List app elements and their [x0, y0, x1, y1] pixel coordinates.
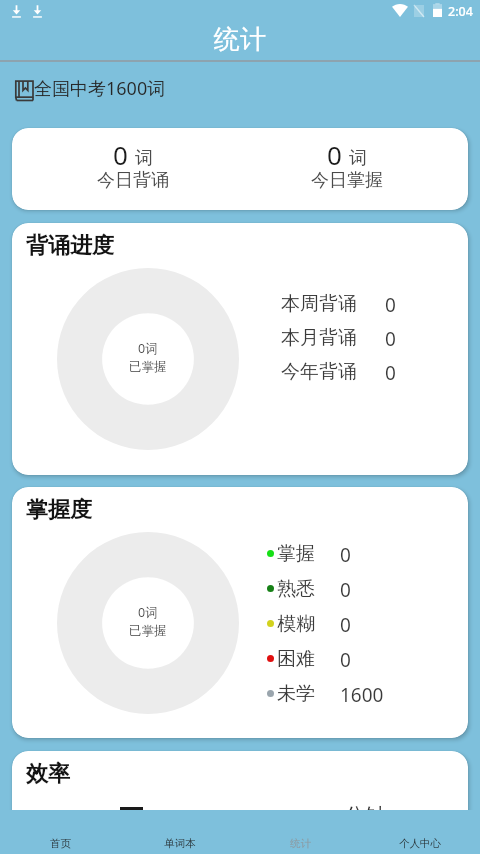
staticText: 困难 — [277, 647, 315, 669]
button[interactable]: 首页 — [0, 810, 120, 854]
staticText: 单词本 — [164, 837, 196, 850]
button[interactable]: 全国中考1600词 — [0, 61, 480, 112]
staticText: 已掌握 — [129, 623, 167, 639]
staticText: 熟悉 — [277, 577, 315, 599]
staticText: 0 — [327, 137, 342, 172]
staticText: 0 — [385, 326, 396, 348]
staticText: 1600 — [340, 682, 384, 704]
staticText: 全国中考1600词 — [34, 76, 166, 101]
staticText: 效率 — [26, 760, 70, 788]
staticText: 本月背诵 — [281, 326, 357, 348]
staticText: 分钟 — [344, 803, 386, 829]
button[interactable]: 0 — [240, 128, 454, 210]
staticText: 0词 — [138, 340, 158, 357]
staticText: 已掌握 — [129, 359, 167, 375]
staticText: 2:04 — [448, 3, 473, 20]
staticText: 0 — [385, 292, 396, 314]
staticText: 词 — [349, 147, 367, 170]
staticText: 个人中心 — [399, 837, 441, 850]
staticText: 0 — [340, 647, 351, 669]
button[interactable]: 单词本 — [120, 810, 240, 854]
button[interactable]: 统计 — [240, 810, 360, 854]
staticText: 0 — [113, 137, 128, 172]
staticText: 今年背诵 — [281, 360, 357, 382]
staticText: 今日背诵 — [97, 169, 169, 192]
staticText: 统计 — [290, 837, 311, 850]
staticText: 0 — [340, 577, 351, 599]
staticText: 首页 — [50, 837, 71, 850]
staticText: 词 — [135, 147, 153, 170]
staticText: 0词 — [138, 604, 158, 621]
staticText: 背诵进度 — [26, 232, 114, 260]
staticText: 统计 — [214, 23, 266, 56]
staticText: 掌握度 — [26, 496, 92, 524]
staticText: 模糊 — [277, 612, 315, 634]
button[interactable]: 0 — [26, 128, 240, 210]
staticText: 掌握 — [277, 542, 315, 564]
staticText: 0 — [340, 542, 351, 564]
staticText: 本周背诵 — [281, 292, 357, 314]
staticText: 今日掌握 — [311, 169, 383, 192]
staticText: 未学 — [277, 682, 315, 704]
button[interactable]: 个人中心 — [360, 810, 480, 854]
staticText: 0 — [340, 612, 351, 634]
staticText: 0 — [385, 360, 396, 382]
